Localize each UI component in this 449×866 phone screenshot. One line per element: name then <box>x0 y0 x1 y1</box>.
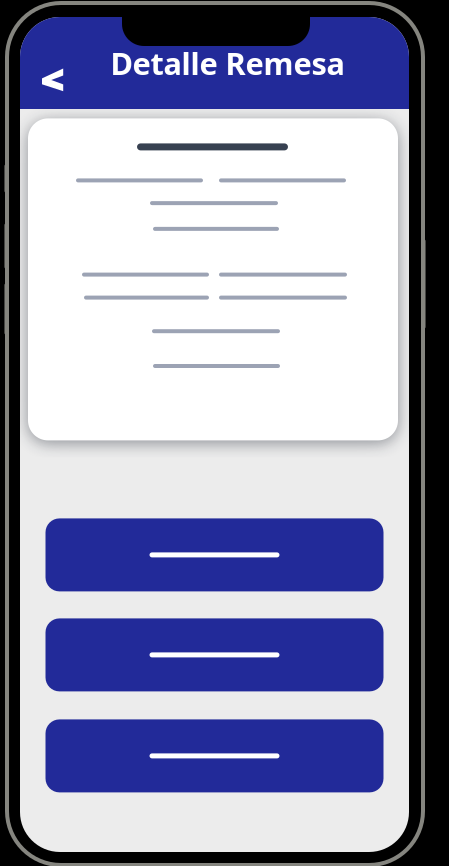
button[interactable]: Acción <box>45 518 383 591</box>
button[interactable]: Back <box>26 52 80 108</box>
button[interactable]: Acción <box>45 719 383 792</box>
button[interactable]: Acción <box>45 618 383 691</box>
staticText: Detalle Remesa <box>110 43 344 83</box>
